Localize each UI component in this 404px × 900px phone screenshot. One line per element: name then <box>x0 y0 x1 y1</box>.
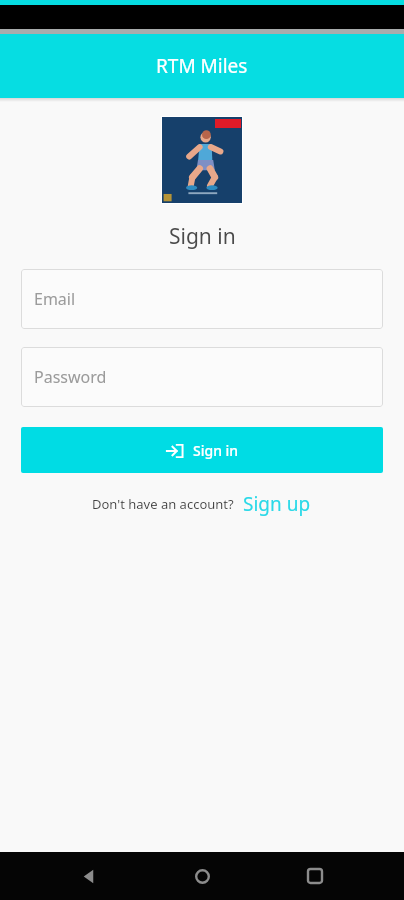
button[interactable]: Recent apps <box>291 852 339 900</box>
button[interactable]: Email <box>21 269 383 329</box>
button[interactable]: Password <box>21 347 383 407</box>
button[interactable]: Sign up <box>241 489 313 519</box>
staticText: Email <box>34 288 76 310</box>
button[interactable]: Home <box>178 852 226 900</box>
staticText: Sign up <box>243 491 311 517</box>
button[interactable]: Sign in <box>21 427 383 473</box>
staticText: RTM Miles <box>156 53 248 79</box>
staticText: Don't have an account? <box>92 495 234 513</box>
staticText: Sign in <box>169 222 236 251</box>
staticText: Sign in <box>193 441 239 460</box>
button[interactable]: Back <box>65 852 113 900</box>
staticText: Password <box>34 366 107 388</box>
